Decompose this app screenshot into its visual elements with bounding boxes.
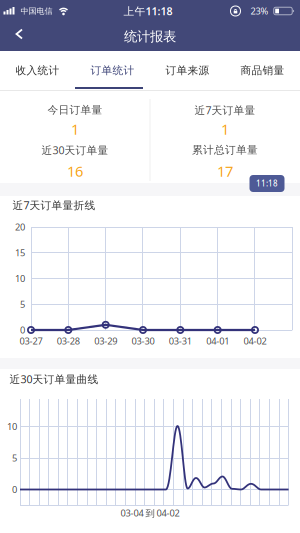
staticText: 近30天订单量 xyxy=(41,143,108,157)
button[interactable]: 11:18 xyxy=(249,175,284,192)
staticText: 04-01 xyxy=(206,335,229,347)
staticText: 03-27 xyxy=(19,335,42,347)
button[interactable]: 订单统计 xyxy=(75,51,150,89)
button[interactable]: 返回 xyxy=(8,24,33,43)
staticText: 统计报表 xyxy=(124,28,176,45)
staticText: 累计总订单量 xyxy=(192,143,258,156)
staticText: 03-29 xyxy=(94,335,117,347)
staticText: 16 xyxy=(67,161,83,181)
staticText: 上午11:18 xyxy=(123,4,172,18)
staticText: 1 xyxy=(71,119,79,139)
staticText: 今日订单量 xyxy=(47,103,102,116)
staticText: 03-04 到 04-02 xyxy=(120,507,179,519)
staticText: 03-28 xyxy=(57,335,80,347)
staticText: 商品销量 xyxy=(240,64,284,77)
staticText: 近30天订单量曲线 xyxy=(9,372,98,386)
button[interactable]: 商品销量 xyxy=(225,51,300,89)
staticText: 03-30 xyxy=(131,335,154,347)
staticText: 10 xyxy=(15,272,25,285)
staticText: 近7天订单量 xyxy=(194,103,255,117)
staticText: 11:18 xyxy=(256,178,278,189)
staticText: 中国电信 xyxy=(20,6,52,16)
staticText: 5 xyxy=(20,298,25,310)
staticText: 15 xyxy=(15,247,25,259)
button[interactable]: 订单来源 xyxy=(150,51,225,89)
staticText: 23% xyxy=(250,5,268,17)
staticText: 03-31 xyxy=(169,335,192,347)
staticText: 订单统计 xyxy=(90,64,134,77)
staticText: 10 xyxy=(7,420,17,433)
staticText: 0 xyxy=(12,483,17,496)
button[interactable]: 收入统计 xyxy=(0,51,75,89)
staticText: 17 xyxy=(217,161,233,181)
staticText: 5 xyxy=(12,452,17,464)
staticText: 20 xyxy=(15,221,25,233)
staticText: 收入统计 xyxy=(15,64,59,77)
staticText: 1 xyxy=(221,119,229,139)
staticText: 近7天订单量折线 xyxy=(12,198,95,212)
staticText: 04-02 xyxy=(243,335,266,347)
staticText: 订单来源 xyxy=(165,64,209,77)
staticText: 0 xyxy=(20,324,25,336)
